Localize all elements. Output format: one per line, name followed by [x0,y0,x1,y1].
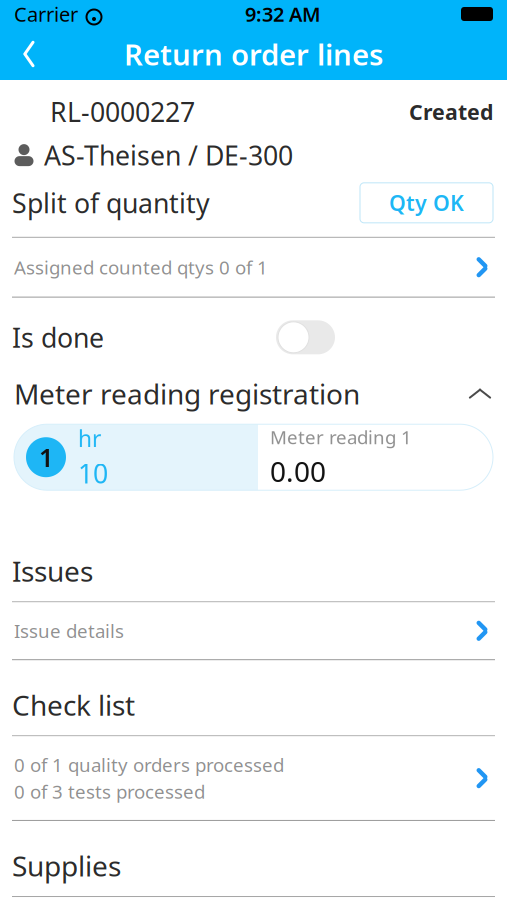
staticText: Supplies [12,847,121,884]
button[interactable]: 0 of 1 quality orders processed [0,736,507,820]
staticText: Meter reading registration [14,375,360,412]
staticText: Is done [12,320,104,355]
staticText: 0 of 1 quality orders processed [14,752,284,777]
staticText: Return order lines [124,34,383,73]
staticText: Created [409,97,493,126]
staticText: Meter reading 1 [270,425,412,449]
staticText: Carrier [14,1,78,27]
button[interactable]: Is done [276,320,335,354]
staticText: 9:32 AM [245,1,321,27]
button[interactable]: Back [0,31,44,77]
staticText: Check list [12,686,135,723]
staticText: Issues [12,552,93,589]
button[interactable]: Qty OK [360,183,493,223]
staticText: RL-0000227 [50,94,195,129]
staticText: hr [78,423,101,454]
staticText: Issue details [14,618,124,643]
button[interactable]: Meter reading registration [0,369,507,418]
staticText: 1 [39,440,53,474]
staticText: Qty OK [389,189,464,217]
button[interactable]: Assigned counted qtys 0 of 1 [0,238,507,297]
staticText: AS-Theisen / DE-300 [44,137,293,173]
staticText: Split of quantity [12,185,210,220]
staticText: 0.00 [270,452,326,490]
staticText: 0 of 3 tests processed [14,779,205,804]
staticText: Assigned counted qtys 0 of 1 [14,255,268,280]
staticText: 10 [78,456,108,491]
button[interactable]: Issue details [0,602,507,659]
